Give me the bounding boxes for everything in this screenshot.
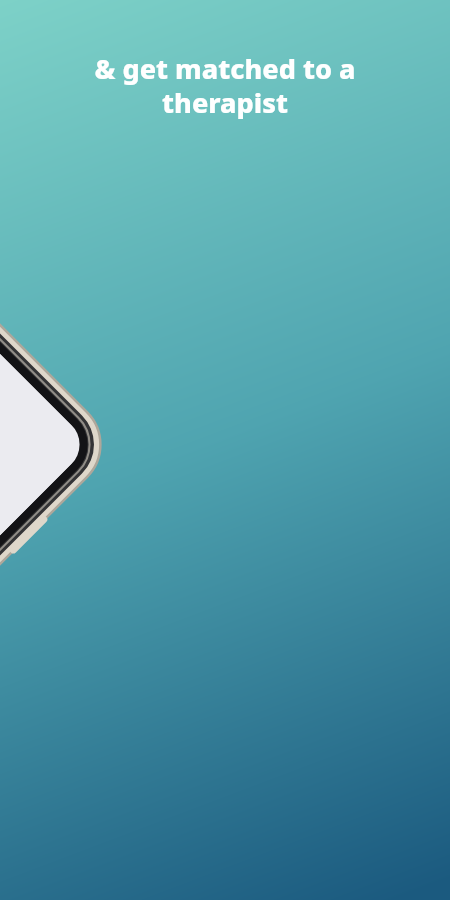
button[interactable]: Already have an account? Log In — [55, 620, 185, 690]
staticText: & get matched to a therapist — [18, 50, 432, 121]
